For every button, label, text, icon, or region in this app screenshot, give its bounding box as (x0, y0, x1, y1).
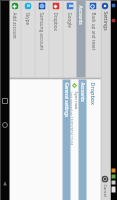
button[interactable]: 8 (63, 0, 76, 77)
button[interactable]: Add account (9, 0, 20, 77)
button[interactable]: S (21, 0, 34, 77)
staticText: Samsung account (38, 12, 44, 50)
staticText: Sync now (73, 91, 78, 109)
staticText: 8 (66, 4, 73, 7)
staticText: S (25, 4, 30, 7)
button[interactable]: Dropbox (49, 0, 62, 77)
staticText: Add account (11, 12, 17, 39)
button[interactable]: Samsung account (35, 0, 48, 77)
staticText: Cancel (102, 184, 107, 197)
button[interactable]: Cancel (101, 172, 108, 200)
button[interactable]: Home (0, 119, 9, 130)
staticText: Google (66, 12, 72, 28)
staticText: Dropbox (89, 82, 96, 105)
staticText: Accounts (79, 82, 85, 102)
button[interactable]: Settings (101, 0, 108, 33)
staticText: Dropbox (52, 12, 58, 31)
staticText: Settings (101, 11, 108, 31)
button[interactable]: Back up and reset (86, 0, 100, 77)
staticText: Skype (24, 12, 30, 25)
staticText: Back up and reset (90, 12, 96, 50)
staticText: Last synced on 15/01/2014 11:04 (70, 91, 73, 145)
staticText: General settings (63, 82, 69, 117)
button[interactable]: Sync now (70, 79, 78, 200)
button[interactable]: Back (0, 177, 9, 188)
button[interactable]: Menu (0, 95, 9, 106)
staticText: Accounts (77, 5, 83, 25)
